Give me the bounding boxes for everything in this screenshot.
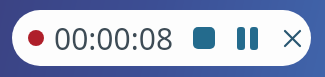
button[interactable]: Recording indicator (22, 24, 50, 52)
button[interactable]: Pause (229, 20, 265, 56)
button[interactable]: Close (275, 21, 309, 55)
staticText: 00:00:08 (54, 18, 174, 59)
button[interactable]: Stop (186, 20, 222, 56)
